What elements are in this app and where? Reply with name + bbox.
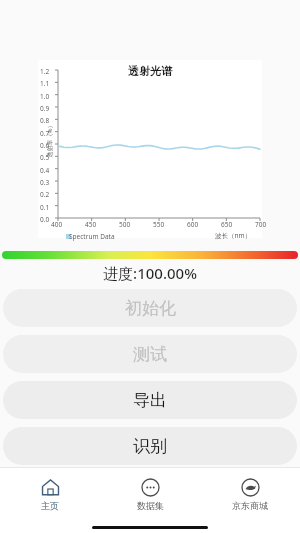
staticText: 600 bbox=[187, 220, 199, 229]
staticText: 波长（nm） bbox=[215, 231, 252, 240]
button[interactable]: 识别 bbox=[3, 427, 297, 465]
other: 数据集 bbox=[141, 478, 160, 497]
staticText: 0.0 bbox=[40, 215, 50, 224]
staticText: 京东商城 bbox=[232, 500, 268, 511]
button[interactable]: 导出 bbox=[3, 381, 297, 419]
staticText: 测试 bbox=[133, 344, 167, 365]
staticText: 透射光谱 bbox=[0, 64, 300, 78]
staticText: 0.4 bbox=[40, 166, 50, 175]
staticText: 1.0 bbox=[40, 92, 50, 101]
button[interactable]: 初始化 bbox=[3, 289, 297, 327]
staticText: 导出 bbox=[133, 390, 167, 411]
staticText: 0.3 bbox=[40, 178, 50, 187]
button[interactable]: 测试 bbox=[3, 335, 297, 373]
staticText: 500 bbox=[119, 220, 131, 229]
staticText: 进度:100.00% bbox=[0, 263, 300, 283]
staticText: 数据集 bbox=[137, 500, 164, 511]
staticText: 初始化 bbox=[125, 298, 176, 319]
staticText: Spectrum Data bbox=[69, 232, 115, 241]
staticText: 400 bbox=[51, 220, 63, 229]
staticText: 0.9 bbox=[40, 104, 50, 113]
staticText: 0.7 bbox=[40, 129, 50, 138]
button[interactable]: 京东商城 bbox=[200, 468, 300, 521]
staticText: 0.5 bbox=[40, 153, 50, 162]
other: 主页 bbox=[41, 478, 60, 497]
staticText: 0.2 bbox=[40, 190, 50, 199]
staticText: 识别 bbox=[133, 436, 167, 457]
staticText: 0.6 bbox=[40, 141, 50, 150]
staticText: 1.1 bbox=[40, 79, 50, 88]
staticText: 450 bbox=[85, 220, 97, 229]
staticText: 透射率（%） bbox=[45, 122, 53, 157]
staticText: 0.1 bbox=[40, 203, 50, 212]
button[interactable]: 数据集 bbox=[100, 468, 200, 521]
staticText: 1.2 bbox=[40, 67, 50, 76]
staticText: 主页 bbox=[41, 500, 59, 511]
staticText: 700 bbox=[255, 220, 267, 229]
staticText: 650 bbox=[221, 220, 233, 229]
button[interactable]: 主页 bbox=[0, 468, 100, 521]
other: 京东商城 bbox=[241, 478, 260, 497]
staticText: 550 bbox=[153, 220, 165, 229]
staticText: 0.8 bbox=[40, 116, 50, 125]
